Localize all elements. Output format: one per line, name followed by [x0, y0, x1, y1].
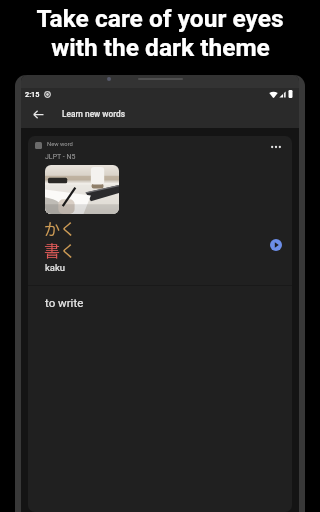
staticText: Learn new words — [62, 109, 126, 119]
button[interactable]: Word illustration — [45, 165, 119, 214]
staticText: 書く — [44, 238, 77, 261]
button[interactable]: Play pronunciation — [266, 235, 286, 255]
staticText: JLPT - N5 — [45, 153, 76, 161]
staticText: to write — [45, 296, 84, 309]
button[interactable]: Back — [27, 103, 49, 125]
staticText: かく — [44, 216, 77, 239]
staticText: New word — [47, 141, 73, 148]
button[interactable]: More options — [267, 138, 285, 156]
staticText: kaku — [45, 262, 66, 273]
staticText: Take care of your eyes — [36, 4, 284, 33]
staticText: 2:15 — [25, 90, 40, 99]
staticText: with the dark theme — [51, 33, 270, 62]
